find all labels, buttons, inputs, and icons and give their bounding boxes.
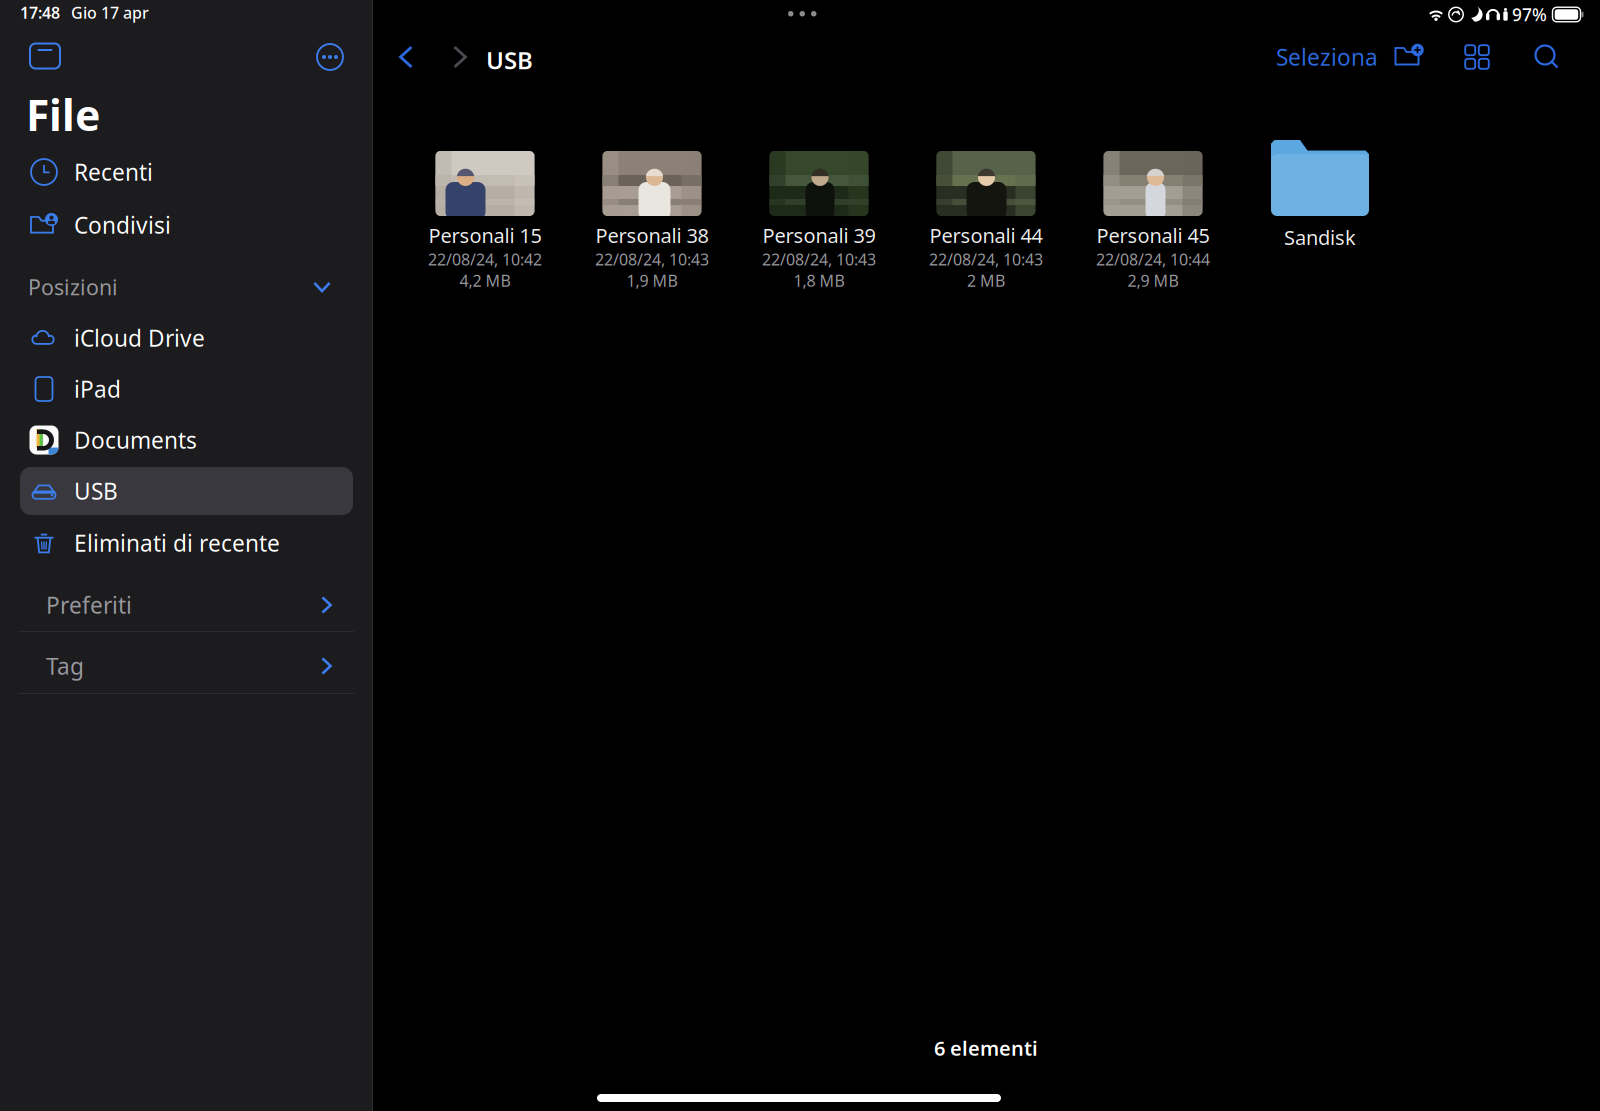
staticText: 22/08/24, 10:42 xyxy=(428,249,542,270)
button[interactable]: Documents xyxy=(20,416,353,464)
staticText: iCloud Drive xyxy=(74,323,205,353)
staticText: 1,8 MB xyxy=(793,270,844,291)
staticText: Tag xyxy=(46,651,84,681)
staticText: USB xyxy=(486,44,533,76)
button[interactable]: Personali 44 xyxy=(910,151,1062,321)
staticText: Sandisk xyxy=(1284,224,1356,251)
staticText: Personali 15 xyxy=(428,222,541,249)
staticText: Gio 17 apr xyxy=(71,2,149,23)
staticText: Seleziona xyxy=(1276,42,1378,72)
staticText: 4,2 MB xyxy=(459,270,510,291)
button[interactable]: View Options xyxy=(1460,35,1494,79)
button[interactable]: Toggle Sidebar xyxy=(23,37,67,75)
button[interactable]: Tag xyxy=(18,644,354,688)
button[interactable]: More xyxy=(310,37,350,77)
button[interactable]: iCloud Drive xyxy=(20,314,353,362)
staticText: 2,9 MB xyxy=(1127,270,1178,291)
button[interactable]: Personali 38 xyxy=(576,151,728,321)
button[interactable]: Sandisk xyxy=(1244,140,1396,310)
staticText: Personali 38 xyxy=(595,222,708,249)
button[interactable]: Posizioni xyxy=(18,265,354,309)
staticText: Personali 39 xyxy=(762,222,875,249)
staticText: Preferiti xyxy=(46,590,132,620)
staticText: USB xyxy=(74,476,118,506)
button[interactable]: Forward xyxy=(440,35,480,79)
button[interactable]: Condivisi xyxy=(20,201,353,249)
button[interactable]: Personali 45 xyxy=(1077,151,1229,321)
button[interactable]: Back xyxy=(386,35,426,79)
button[interactable]: USB xyxy=(20,467,353,515)
button[interactable]: New Folder xyxy=(1391,35,1425,79)
button[interactable]: Search xyxy=(1530,35,1564,79)
staticText: File xyxy=(26,86,100,143)
button[interactable]: Seleziona xyxy=(1272,35,1382,79)
staticText: 22/08/24, 10:43 xyxy=(929,249,1043,270)
staticText: Personali 45 xyxy=(1096,222,1209,249)
staticText: iPad xyxy=(74,374,121,404)
button[interactable]: Personali 15 xyxy=(409,151,561,321)
staticText: 17:48 xyxy=(20,2,60,23)
button[interactable]: Recenti xyxy=(20,148,353,196)
staticText: Posizioni xyxy=(28,273,118,301)
button[interactable]: Preferiti xyxy=(18,583,354,627)
staticText: Personali 44 xyxy=(929,222,1042,249)
staticText: 22/08/24, 10:43 xyxy=(762,249,876,270)
staticText: 97% xyxy=(1512,3,1547,26)
staticText: 22/08/24, 10:44 xyxy=(1096,249,1210,270)
button[interactable]: Eliminati di recente xyxy=(20,519,353,567)
button[interactable]: Personali 39 xyxy=(743,151,895,321)
button[interactable]: iPad xyxy=(20,365,353,413)
staticText: Eliminati di recente xyxy=(74,528,280,558)
staticText: Condivisi xyxy=(74,210,171,240)
staticText: 6 elementi xyxy=(934,1035,1038,1061)
staticText: 2 MB xyxy=(967,270,1005,291)
staticText: Documents xyxy=(74,425,197,455)
staticText: 1,9 MB xyxy=(626,270,677,291)
staticText: Recenti xyxy=(74,157,153,187)
staticText: 22/08/24, 10:43 xyxy=(595,249,709,270)
